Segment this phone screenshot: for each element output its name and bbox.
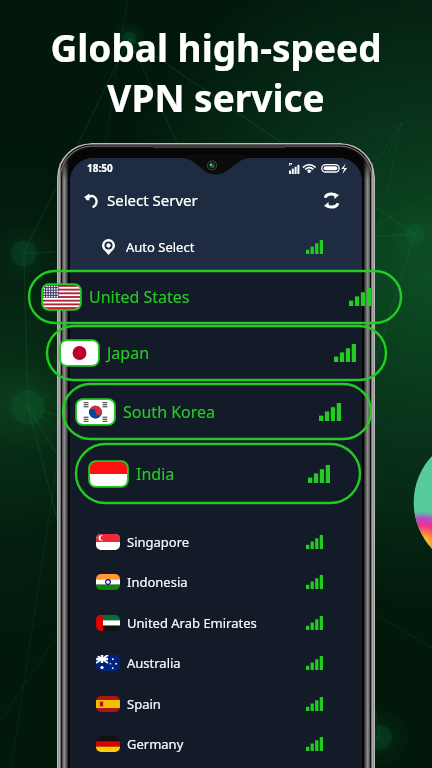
staticText: Indonesia xyxy=(127,573,188,591)
button[interactable]: Refresh xyxy=(318,187,344,213)
staticText: Singapore xyxy=(127,533,190,551)
staticText: Auto Select xyxy=(126,238,195,256)
button[interactable]: India xyxy=(76,444,360,503)
staticText: Select Server xyxy=(107,190,198,210)
staticText: Australia xyxy=(127,654,181,672)
staticText: United Arab Emirates xyxy=(127,614,257,632)
staticText: India xyxy=(136,463,175,485)
button[interactable]: Back xyxy=(78,187,104,213)
staticText: Germany xyxy=(127,735,184,753)
staticText: Japan xyxy=(107,342,150,364)
button[interactable]: Spain xyxy=(70,684,362,724)
button[interactable]: Australia xyxy=(70,643,362,683)
staticText: South Korea xyxy=(123,401,216,423)
staticText: Spain xyxy=(127,695,161,713)
button[interactable]: Germany xyxy=(70,724,362,764)
button[interactable]: United Arab Emirates xyxy=(70,603,362,643)
button[interactable]: United States xyxy=(29,271,401,323)
button[interactable]: Japan xyxy=(47,326,386,380)
button[interactable]: Auto Select xyxy=(70,222,362,271)
staticText: 18:50 xyxy=(87,161,113,175)
staticText: United States xyxy=(89,286,190,308)
button[interactable]: Singapore xyxy=(70,522,362,562)
staticText: VPN service xyxy=(107,72,325,122)
staticText: Global high-speed xyxy=(50,22,382,72)
button[interactable]: Indonesia xyxy=(70,562,362,602)
button[interactable]: South Korea xyxy=(63,384,371,439)
